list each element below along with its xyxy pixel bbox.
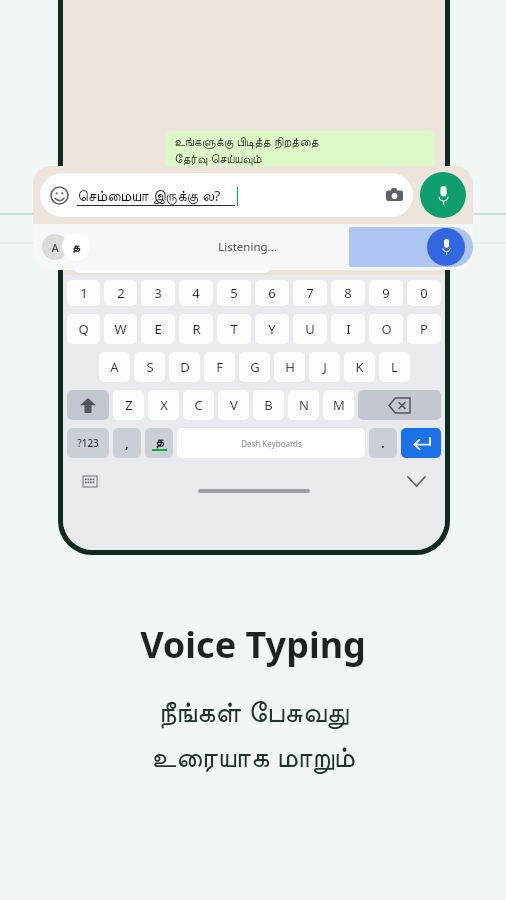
- staticText: ,: [125, 435, 129, 451]
- button[interactable]: Q: [67, 314, 100, 344]
- staticText: B: [264, 396, 273, 414]
- button[interactable]: X: [148, 390, 179, 420]
- button[interactable]: U: [293, 314, 327, 344]
- button[interactable]: Keyboard layout: [83, 474, 97, 488]
- staticText: 11:25 AM: [154, 203, 187, 213]
- button[interactable]: I: [331, 314, 365, 344]
- button[interactable]: O: [369, 314, 403, 344]
- staticText: 2: [117, 284, 125, 302]
- button[interactable]: Voice message: [420, 172, 466, 218]
- staticText: 8: [344, 284, 352, 302]
- button[interactable]: S: [134, 352, 165, 382]
- staticText: E: [154, 320, 162, 338]
- staticText: Listening...: [218, 239, 277, 255]
- staticText: M: [333, 396, 345, 414]
- button[interactable]: K: [344, 352, 375, 382]
- staticText: D: [180, 358, 190, 376]
- button[interactable]: 4: [179, 280, 213, 306]
- staticText: 1: [80, 284, 88, 302]
- button[interactable]: M: [323, 390, 354, 420]
- button[interactable]: Desh Keyboards: [177, 428, 365, 458]
- staticText: G: [250, 358, 260, 376]
- button[interactable]: .: [369, 428, 397, 458]
- button[interactable]: Hide keyboard: [407, 472, 425, 490]
- staticText: 5: [230, 284, 238, 302]
- staticText: உரையாக மாறும்: [151, 736, 355, 775]
- staticText: W: [114, 320, 127, 338]
- staticText: 3: [154, 284, 162, 302]
- button[interactable]: G: [239, 352, 270, 382]
- button[interactable]: ?123: [67, 428, 109, 458]
- staticText: P: [420, 320, 428, 338]
- staticText: U: [305, 320, 315, 338]
- button[interactable]: Z: [113, 390, 144, 420]
- staticText: K: [355, 358, 364, 376]
- staticText: 11:24 AM: [379, 167, 412, 177]
- button[interactable]: T: [217, 314, 251, 344]
- button[interactable]: A: [42, 234, 68, 260]
- button[interactable]: W: [104, 314, 137, 344]
- button[interactable]: Camera: [385, 186, 403, 204]
- staticText: தேர்வு செய்யவும்: [174, 150, 262, 167]
- button[interactable]: 0: [407, 280, 441, 306]
- button[interactable]: Shift: [67, 390, 109, 420]
- staticText: பேசினால் உரையாக வரும்: [82, 250, 222, 268]
- button[interactable]: B: [253, 390, 284, 420]
- staticText: ?123: [77, 436, 99, 450]
- button[interactable]: Y: [255, 314, 289, 344]
- button[interactable]: Stop listening: [427, 228, 465, 266]
- staticText: 9: [382, 284, 390, 302]
- staticText: .: [381, 435, 385, 451]
- button[interactable]: P: [407, 314, 441, 344]
- button[interactable]: E: [141, 314, 175, 344]
- staticText: 0: [420, 284, 428, 302]
- staticText: C: [194, 396, 203, 414]
- button[interactable]: Backspace: [358, 390, 441, 420]
- staticText: V: [230, 396, 238, 414]
- button[interactable]: L: [379, 352, 410, 382]
- staticText: 6: [268, 284, 276, 302]
- button[interactable]: D: [169, 352, 200, 382]
- button[interactable]: 7: [293, 280, 327, 306]
- button[interactable]: Enter: [401, 428, 441, 458]
- button[interactable]: 2: [104, 280, 137, 306]
- button[interactable]: J: [309, 352, 340, 382]
- button[interactable]: செம்மையா இருக்கு ல?: [40, 173, 413, 217]
- button[interactable]: 1: [67, 280, 100, 306]
- button[interactable]: 8: [331, 280, 365, 306]
- button[interactable]: V: [218, 390, 249, 420]
- staticText: த: [155, 436, 164, 449]
- button[interactable]: 5: [217, 280, 251, 306]
- button[interactable]: ,: [113, 428, 141, 458]
- staticText: நீங்கள் பேசுவது: [158, 691, 349, 730]
- button[interactable]: C: [183, 390, 214, 420]
- staticText: T: [230, 320, 238, 338]
- button[interactable]: A: [99, 352, 130, 382]
- staticText: F: [216, 358, 223, 376]
- staticText: த: [72, 241, 80, 253]
- button[interactable]: த: [62, 233, 90, 261]
- button[interactable]: R: [179, 314, 213, 344]
- button[interactable]: F: [204, 352, 235, 382]
- button[interactable]: N: [288, 390, 319, 420]
- staticText: H: [285, 358, 295, 376]
- button[interactable]: Tamil language: [145, 428, 173, 458]
- staticText: Y: [268, 320, 276, 338]
- button[interactable]: 9: [369, 280, 403, 306]
- staticText: 7: [306, 284, 314, 302]
- staticText: R: [192, 320, 201, 338]
- staticText: J: [323, 358, 327, 376]
- button[interactable]: 6: [255, 280, 289, 306]
- button[interactable]: H: [274, 352, 305, 382]
- staticText: 4: [192, 284, 200, 302]
- staticText: A: [51, 240, 59, 255]
- button[interactable]: 3: [141, 280, 175, 306]
- staticText: L: [391, 358, 398, 376]
- staticText: Z: [125, 396, 133, 414]
- staticText: N: [299, 396, 309, 414]
- staticText: S: [146, 358, 154, 376]
- staticText: I: [346, 320, 351, 338]
- staticText: X: [160, 396, 168, 414]
